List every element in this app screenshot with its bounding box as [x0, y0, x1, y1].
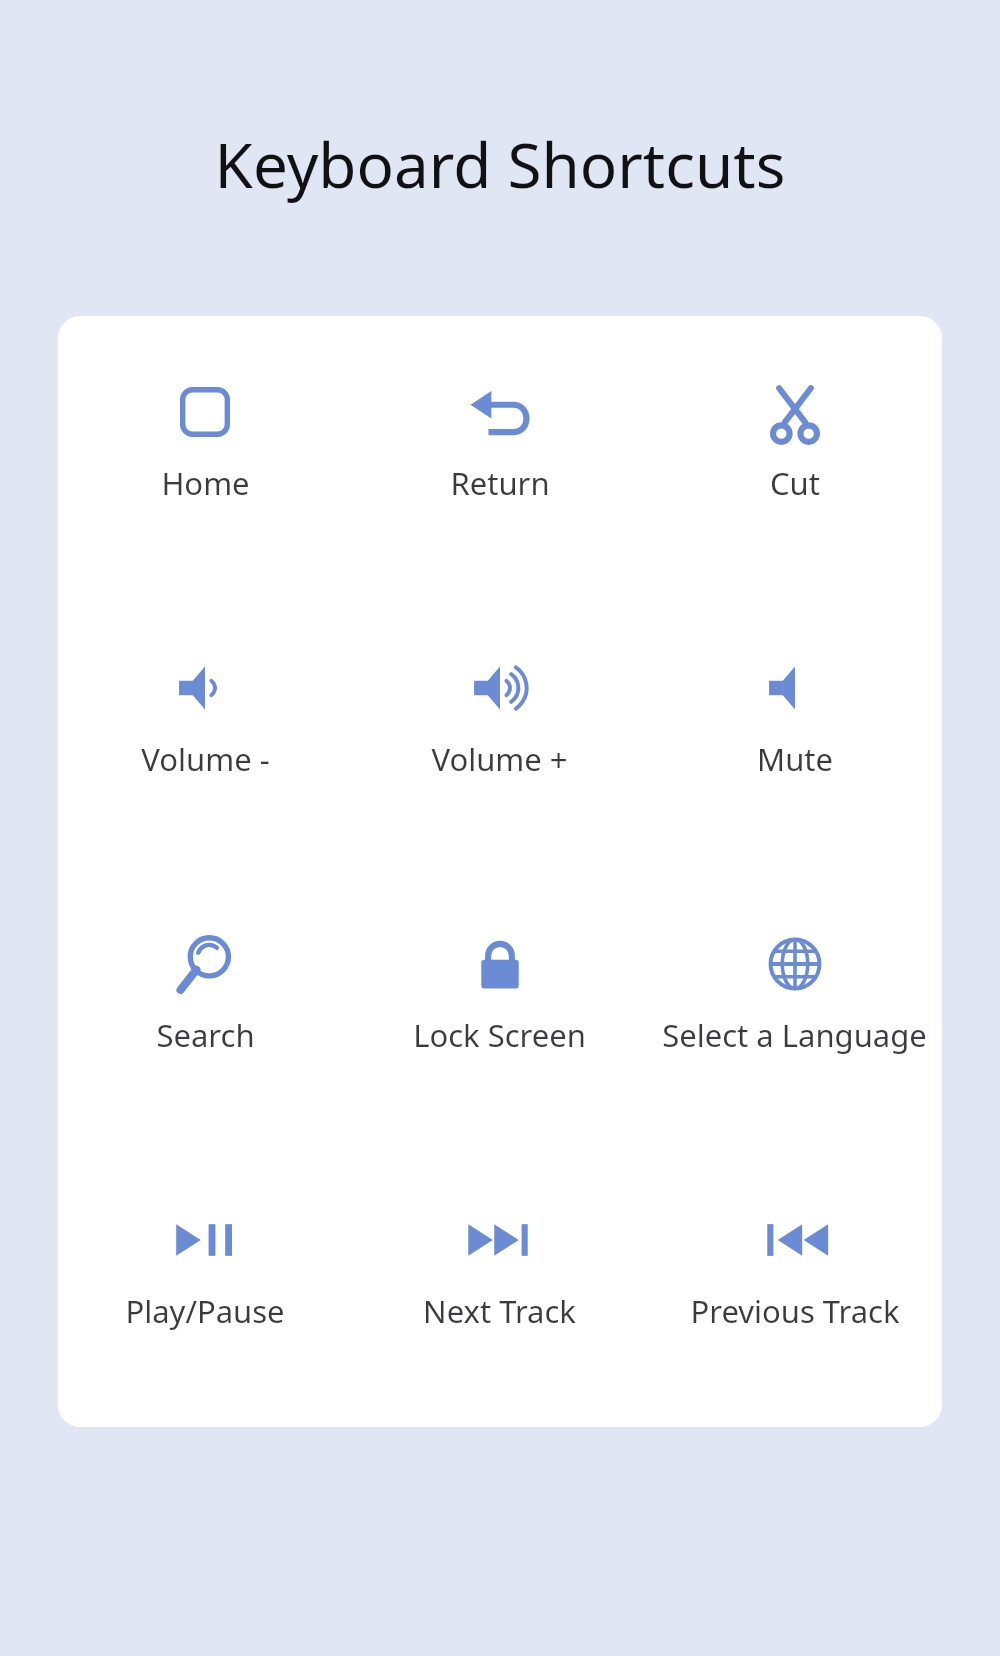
staticText: Volume - [141, 738, 270, 780]
staticText: Previous Track [690, 1290, 900, 1332]
button[interactable]: Next Track [352, 1204, 647, 1332]
button[interactable]: Select a Language [647, 928, 942, 1056]
button[interactable]: Volume - [58, 652, 352, 780]
staticText: Play/Pause [125, 1290, 285, 1332]
button[interactable]: Volume + [352, 652, 647, 780]
button[interactable]: Home [58, 376, 352, 504]
button[interactable]: Mute [647, 652, 942, 780]
staticText: Select a Language [662, 1014, 927, 1056]
staticText: Keyboard Shortcuts [0, 122, 1000, 206]
button[interactable]: Lock Screen [352, 928, 647, 1056]
staticText: Home [161, 462, 250, 504]
button[interactable]: Previous Track [647, 1204, 942, 1332]
button[interactable]: Search [58, 928, 352, 1056]
staticText: Mute [757, 738, 833, 780]
staticText: Next Track [423, 1290, 576, 1332]
staticText: Volume + [431, 738, 568, 780]
staticText: Cut [770, 462, 820, 504]
button[interactable]: Cut [647, 376, 942, 504]
staticText: Lock Screen [413, 1014, 586, 1056]
staticText: Return [450, 462, 550, 504]
button[interactable]: Return [352, 376, 647, 504]
button[interactable]: Play/Pause [58, 1204, 352, 1332]
staticText: Search [156, 1014, 255, 1056]
